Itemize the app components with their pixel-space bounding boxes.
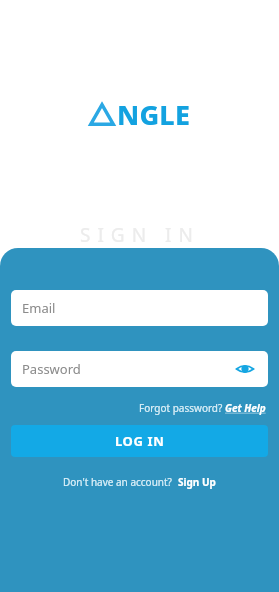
staticText: Get Help — [225, 401, 266, 415]
staticText: LOG IN — [115, 432, 165, 450]
staticText: Email — [22, 299, 56, 317]
button[interactable]: Show password — [233, 357, 257, 381]
button[interactable]: Email — [11, 290, 268, 326]
staticText: Forgot password? — [139, 401, 225, 415]
staticText: Don't have an account? — [63, 475, 178, 489]
staticText: Password — [22, 360, 81, 378]
staticText: Sign Up — [178, 475, 216, 489]
staticText: SIGN IN — [80, 222, 200, 248]
staticText: NGLE — [117, 96, 191, 133]
button[interactable]: Password — [11, 351, 268, 387]
button[interactable]: Forgot password? — [137, 399, 268, 417]
button[interactable]: Don't have an account? — [59, 473, 220, 491]
button[interactable]: LOG IN — [11, 425, 268, 457]
